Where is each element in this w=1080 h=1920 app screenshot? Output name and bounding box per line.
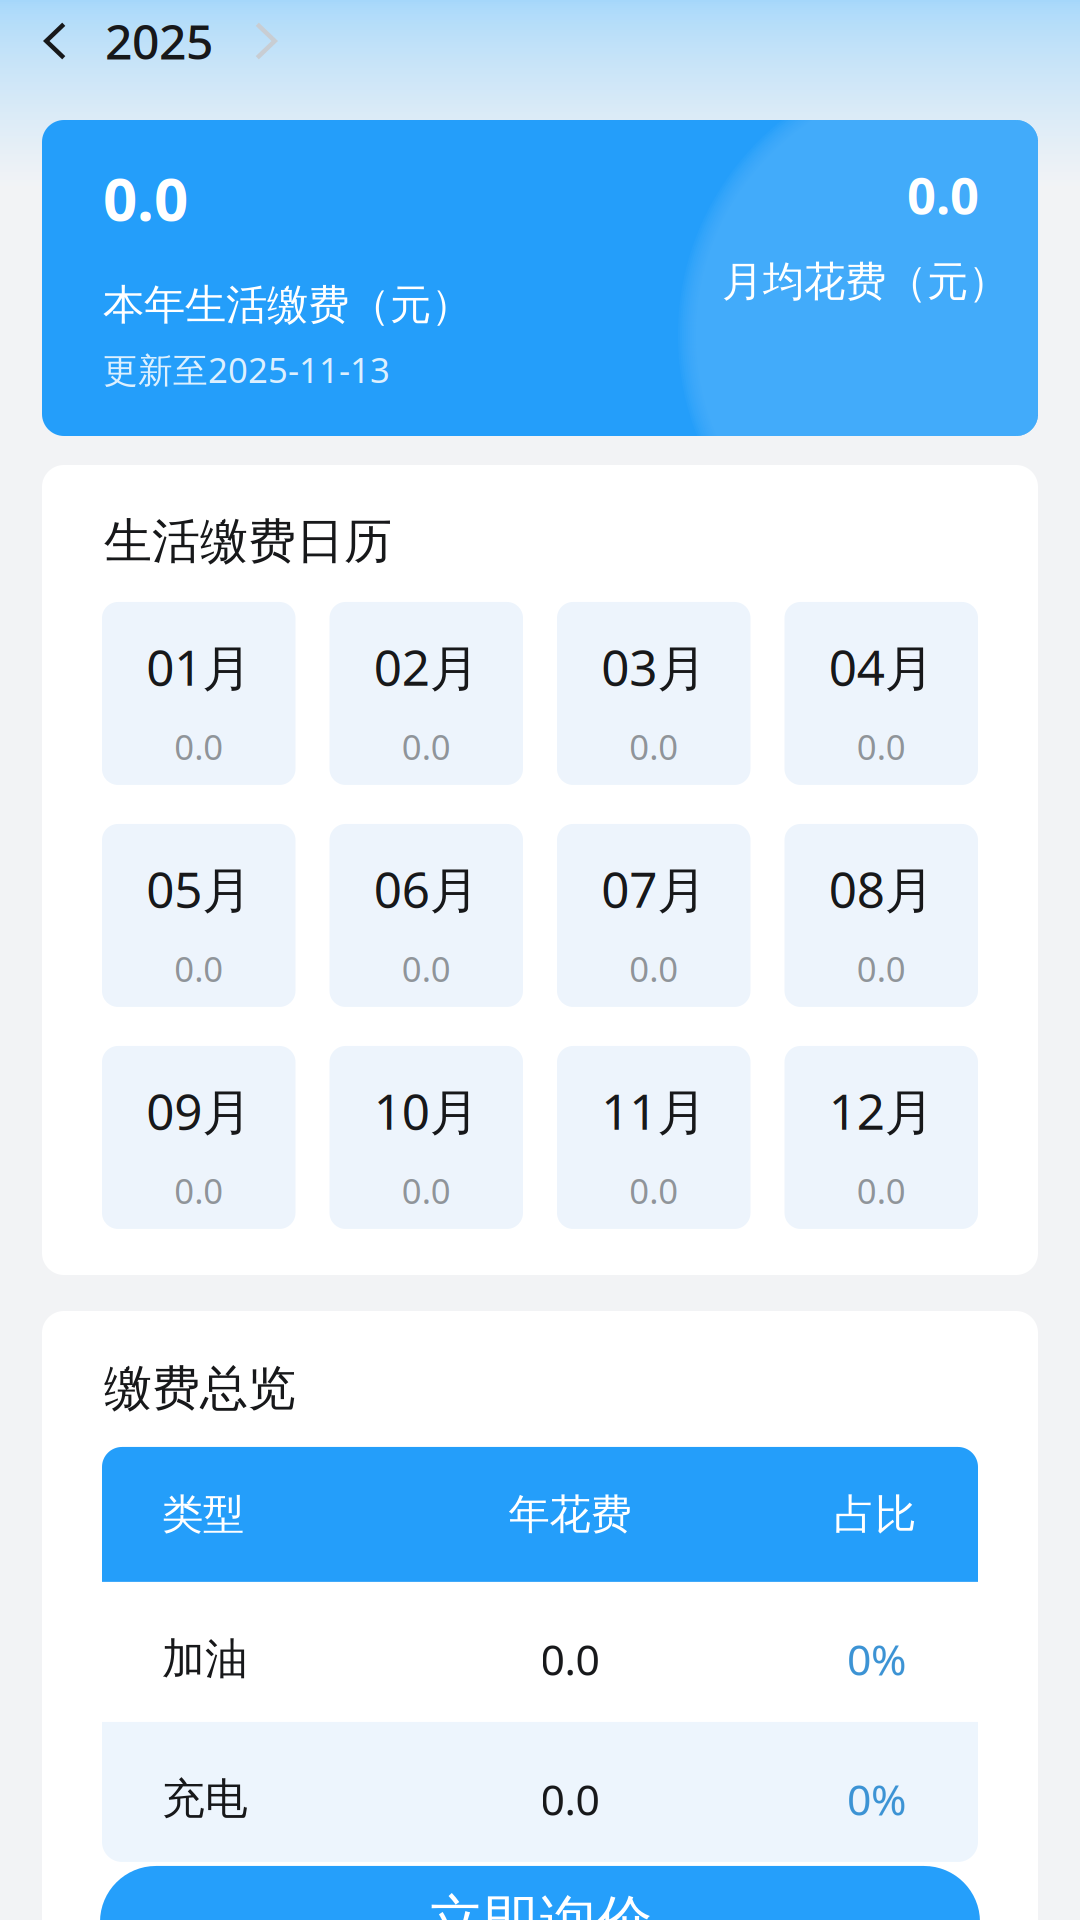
staticText: 10月 xyxy=(374,1078,479,1143)
staticText: 11月 xyxy=(601,1078,706,1143)
staticText: 0.0 xyxy=(857,1167,906,1213)
staticText: 0.0 xyxy=(174,945,223,991)
staticText: 05月 xyxy=(146,856,251,921)
button[interactable]: 04月 xyxy=(784,602,978,785)
button[interactable]: 07月 xyxy=(557,824,750,1007)
button[interactable]: 11月 xyxy=(557,1046,750,1229)
button[interactable]: 06月 xyxy=(329,824,523,1007)
staticText: 03月 xyxy=(601,634,706,699)
staticText: 0.0 xyxy=(629,723,678,769)
button[interactable]: 10月 xyxy=(329,1046,523,1229)
staticText: 缴费总览 xyxy=(104,1359,296,1418)
button[interactable]: 01月 xyxy=(102,602,295,785)
staticText: 0.0 xyxy=(174,1167,223,1213)
staticText: 06月 xyxy=(374,856,479,921)
button[interactable]: 09月 xyxy=(102,1046,295,1229)
staticText: 充电 xyxy=(162,1773,248,1825)
staticText: 0.0 xyxy=(103,158,188,238)
staticText: 0% xyxy=(847,1771,906,1827)
staticText: 0.0 xyxy=(907,161,979,228)
staticText: 生活缴费日历 xyxy=(104,512,392,571)
button[interactable]: 02月 xyxy=(329,602,523,785)
staticText: 12月 xyxy=(829,1078,934,1143)
staticText: 0.0 xyxy=(857,945,906,991)
button[interactable]: 05月 xyxy=(102,824,295,1007)
staticText: 2025 xyxy=(105,9,213,73)
button[interactable]: 08月 xyxy=(784,824,978,1007)
staticText: 0.0 xyxy=(629,1167,678,1213)
staticText: 0% xyxy=(847,1631,906,1687)
staticText: 类型 xyxy=(162,1489,244,1540)
button[interactable]: 立即询价 xyxy=(100,1866,980,1920)
button[interactable]: Previous year xyxy=(30,8,80,74)
staticText: 0.0 xyxy=(540,1771,599,1827)
staticText: 0.0 xyxy=(857,723,906,769)
staticText: 0.0 xyxy=(540,1631,599,1687)
staticText: 08月 xyxy=(829,856,934,921)
staticText: 0.0 xyxy=(402,723,451,769)
staticText: 0.0 xyxy=(629,945,678,991)
staticText: 0.0 xyxy=(174,723,223,769)
staticText: 0.0 xyxy=(402,1167,451,1213)
staticText: 占比 xyxy=(834,1489,916,1540)
button[interactable]: Next year xyxy=(241,8,291,74)
staticText: 07月 xyxy=(601,856,706,921)
button[interactable]: 03月 xyxy=(557,602,750,785)
staticText: 04月 xyxy=(829,634,934,699)
staticText: 09月 xyxy=(146,1078,251,1143)
staticText: 加油 xyxy=(162,1633,248,1685)
staticText: 立即询价 xyxy=(428,1888,652,1920)
button[interactable]: 12月 xyxy=(784,1046,978,1229)
staticText: 本年生活缴费（元） xyxy=(103,280,472,330)
staticText: 月均花费（元） xyxy=(722,256,1009,307)
staticText: 0.0 xyxy=(402,945,451,991)
staticText: 年花费 xyxy=(508,1489,631,1540)
staticText: 02月 xyxy=(374,634,479,699)
staticText: 01月 xyxy=(146,634,251,699)
staticText: 更新至2025-11-13 xyxy=(103,346,390,392)
